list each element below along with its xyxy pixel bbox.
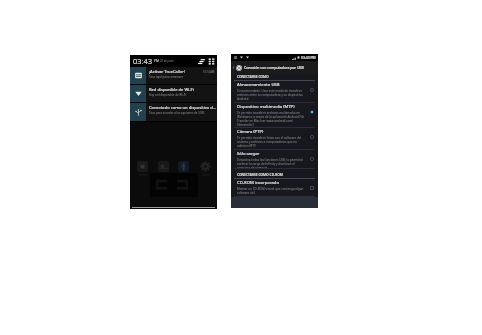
- staticText: Dispositivo multimedia (MTP): [237, 104, 295, 110]
- button[interactable]: Red disponible de Wi-Fi: [130, 85, 217, 102]
- staticText: Almacenamiento USB: [237, 82, 280, 88]
- button[interactable]: Conexión con computadora por USB: [231, 61, 318, 74]
- staticText: Toca aquí para comenzar: [149, 75, 183, 79]
- button[interactable]: Sólo cargar: [231, 150, 318, 169]
- staticText: 03:43: [133, 56, 153, 66]
- button[interactable]: Borrar notificaciones: [198, 58, 205, 65]
- button[interactable]: ¡Activar TrueCaller!: [130, 67, 217, 84]
- button[interactable]: CD-ROM incorporado: [231, 179, 318, 197]
- staticText: Te permite transferir fotos con el softw…: [237, 136, 307, 148]
- staticText: Hay red disponible de Wi-Fi: [149, 93, 186, 97]
- staticText: Sólo cargar: [237, 151, 260, 157]
- staticText: Te permite transferir archivos multimedi…: [237, 111, 307, 127]
- button[interactable]: Cámara (PTP): [231, 128, 318, 150]
- button[interactable]: Conectado como un dispositivo d...: [130, 103, 217, 121]
- staticText: Conectado como un dispositivo d...: [149, 105, 217, 111]
- staticText: CONECTARSE COMO CD-ROM: [237, 172, 283, 176]
- staticText: CONECTARSE COMO: [237, 74, 269, 78]
- staticText: CD-ROM incorporado: [237, 180, 279, 186]
- staticText: Si recomendado. Usar este modo de transf…: [237, 89, 307, 101]
- button[interactable]: Ajustes rapidos: [208, 58, 215, 65]
- button[interactable]: Dispositivo multimedia (MTP): [231, 103, 318, 128]
- staticText: Desactiva todas las funciones USB, lo pe…: [237, 158, 307, 169]
- staticText: Red disponible de Wi-Fi: [149, 87, 194, 93]
- staticText: Toca para acceder a las opciones de USB.: [149, 111, 205, 115]
- staticText: Conexión con computadora por USB: [244, 65, 304, 70]
- staticText: ¡Activar TrueCaller!: [149, 69, 186, 75]
- staticText: 20 de junio: [160, 59, 174, 63]
- button[interactable]: Almacenamiento USB: [231, 81, 318, 103]
- staticText: Montar un CD-ROM virtual que contenga al…: [237, 187, 307, 195]
- staticText: 10:14 AM: [203, 70, 215, 74]
- staticText: Cámara (PTP): [237, 129, 264, 135]
- staticText: 03:43 PM: [301, 55, 316, 60]
- staticText: PM: [154, 59, 159, 63]
